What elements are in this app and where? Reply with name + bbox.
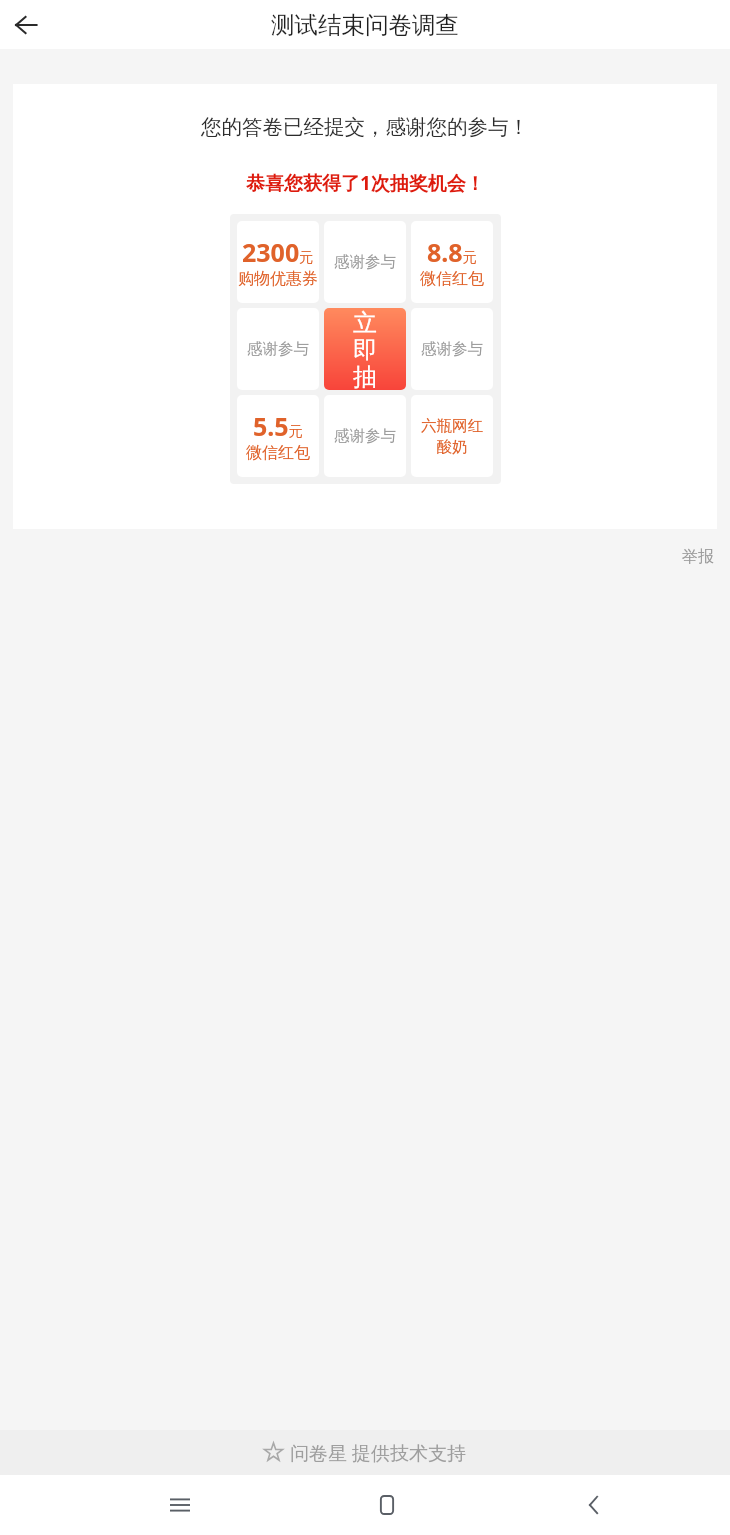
button[interactable]: 感谢参与	[411, 308, 493, 390]
button[interactable]: 感谢参与	[237, 308, 319, 390]
button[interactable]: 感谢参与	[324, 221, 406, 303]
staticText: 测试结束问卷调查	[271, 10, 459, 40]
staticText: 微信红包	[246, 443, 310, 463]
button[interactable]: 问卷星 提供技术支持	[0, 1430, 730, 1475]
staticText: 8.8元	[427, 235, 477, 269]
staticText: 2300元	[242, 235, 314, 269]
staticText: 您的答卷已经提交，感谢您的参与！	[201, 114, 529, 140]
button[interactable]: Recent apps	[145, 1475, 215, 1535]
button[interactable]: Back	[560, 1475, 630, 1535]
staticText: 感谢参与	[247, 339, 309, 359]
button[interactable]: 六瓶网红酸奶	[411, 395, 493, 477]
button[interactable]: Back	[6, 5, 46, 45]
button[interactable]: 感谢参与	[324, 395, 406, 477]
button[interactable]: Home	[352, 1475, 422, 1535]
staticText: 立即抽奖	[352, 308, 378, 390]
button[interactable]: 2300元	[237, 221, 319, 303]
staticText: 六瓶网红酸奶	[415, 416, 489, 457]
button[interactable]: 8.8元	[411, 221, 493, 303]
button[interactable]: 立即抽奖	[324, 308, 406, 390]
staticText: 5.5元	[253, 409, 303, 443]
staticText: 问卷星 提供技术支持	[290, 1440, 466, 1466]
staticText: 微信红包	[420, 269, 484, 289]
staticText: 感谢参与	[334, 426, 396, 446]
staticText: 感谢参与	[421, 339, 483, 359]
staticText: 感谢参与	[334, 252, 396, 272]
staticText: 购物优惠券	[238, 269, 318, 289]
button[interactable]: 5.5元	[237, 395, 319, 477]
button[interactable]: 举报	[666, 539, 730, 575]
staticText: 恭喜您获得了1次抽奖机会！	[246, 170, 485, 196]
staticText: 举报	[682, 547, 714, 567]
